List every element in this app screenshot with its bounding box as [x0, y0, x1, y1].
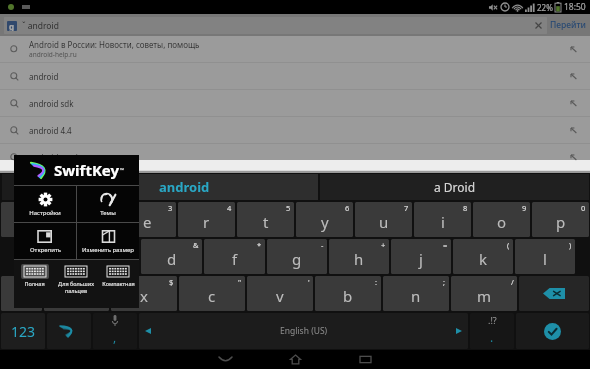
staticText: 3 [168, 203, 173, 213]
button[interactable]: Полная [16, 262, 53, 306]
button[interactable]: android 4.4 [0, 117, 590, 143]
button[interactable] [2, 174, 48, 200]
staticText: & [193, 240, 199, 250]
button[interactable]: r [178, 202, 235, 237]
button[interactable]: d [141, 239, 202, 274]
button[interactable]: x [111, 276, 177, 311]
button[interactable]: Recents [330, 350, 400, 369]
button[interactable]: Voice input [93, 313, 137, 349]
staticText: x [140, 286, 148, 306]
button[interactable]: u [355, 202, 412, 237]
button[interactable]: SwiftKey menu [47, 313, 91, 349]
staticText: 5 [286, 203, 291, 213]
staticText: l [543, 249, 547, 269]
button[interactable]: c [179, 276, 245, 311]
button[interactable]: Backspace [519, 276, 589, 311]
staticText: t [263, 212, 269, 232]
button[interactable]: Android в России: Новости, советы, помощ… [0, 36, 590, 62]
staticText: 7 [404, 203, 409, 213]
staticText: e [143, 212, 152, 232]
button[interactable]: i [414, 202, 471, 237]
staticText: k [479, 249, 488, 269]
other: Insert suggestion [569, 126, 578, 135]
button[interactable]: Темы [77, 186, 139, 222]
button[interactable]: a Droid [320, 174, 589, 200]
button[interactable]: g [4, 17, 547, 34]
button[interactable]: Компактная [99, 262, 137, 306]
staticText: . [490, 329, 494, 345]
staticText: 9 [522, 203, 527, 213]
button[interactable]: p [532, 202, 589, 237]
staticText: u [379, 212, 389, 232]
staticText: r [203, 212, 210, 232]
staticText: * [257, 240, 262, 250]
button[interactable]: z [44, 276, 109, 311]
staticText: ; [443, 277, 446, 287]
staticText: 8 [463, 203, 468, 213]
button[interactable]: android [0, 63, 590, 89]
button[interactable]: Home [260, 350, 330, 369]
button[interactable]: Перейти [550, 19, 586, 31]
button[interactable]: l [515, 239, 575, 274]
button[interactable]: Открепить [14, 223, 76, 259]
staticText: SwiftKey [54, 160, 120, 180]
staticText: a Droid [434, 179, 476, 195]
staticText: g [292, 249, 302, 269]
button[interactable]: s [78, 239, 139, 274]
button[interactable]: g [267, 239, 327, 274]
staticText: Темы [100, 209, 116, 217]
button[interactable]: h [329, 239, 389, 274]
button[interactable]: .!? [470, 313, 514, 349]
button[interactable]: 123 [1, 313, 45, 349]
staticText: v [276, 286, 284, 306]
other: Insert suggestion [569, 153, 578, 162]
button[interactable]: m [451, 276, 517, 311]
staticText: Полная [24, 280, 45, 287]
staticText: 2 [109, 203, 114, 213]
button[interactable]: android sdk [0, 90, 590, 116]
button[interactable]: Для больших пальцев [57, 262, 95, 306]
staticText: _ [102, 277, 106, 287]
button[interactable]: j [391, 239, 451, 274]
staticText: / [511, 277, 514, 287]
button[interactable]: a [15, 239, 76, 274]
staticText: j [419, 249, 423, 269]
button[interactable]: Изменить размер [77, 223, 139, 259]
staticText: : [375, 277, 378, 287]
button[interactable]: v [247, 276, 313, 311]
staticText: m [477, 286, 492, 306]
button[interactable]: e [119, 202, 176, 237]
staticText: ˇ android [22, 20, 59, 32]
staticText: p [556, 212, 566, 232]
button[interactable]: k [453, 239, 513, 274]
button[interactable]: f [204, 239, 265, 274]
staticText: d [167, 249, 177, 269]
button[interactable]: t [237, 202, 294, 237]
staticText: ' [308, 277, 310, 287]
staticText: Настройки [29, 209, 61, 217]
button[interactable]: English (US) [139, 313, 468, 349]
button[interactable]: n [383, 276, 449, 311]
staticText: o [497, 212, 507, 232]
staticText: z [73, 286, 81, 306]
button[interactable]: Hide keyboard [190, 350, 260, 369]
button[interactable]: b [315, 276, 381, 311]
staticText: 0 [581, 203, 586, 213]
button[interactable]: w [60, 202, 117, 237]
staticText: s [105, 249, 113, 269]
button[interactable]: Enter [516, 313, 589, 349]
button[interactable]: q [1, 202, 58, 237]
staticText: ™ [120, 167, 124, 174]
staticText: a [41, 249, 50, 269]
button[interactable]: y [296, 202, 353, 237]
staticText: android market [29, 152, 88, 163]
button[interactable]: Настройки [14, 186, 76, 222]
staticText: android-help.ru [29, 50, 77, 59]
button[interactable]: android market [0, 144, 590, 170]
staticText: b [343, 286, 353, 306]
button[interactable]: Shift [1, 276, 42, 311]
button[interactable]: android [50, 174, 318, 200]
staticText: , [113, 329, 117, 345]
staticText: 6 [345, 203, 350, 213]
button[interactable]: o [473, 202, 530, 237]
